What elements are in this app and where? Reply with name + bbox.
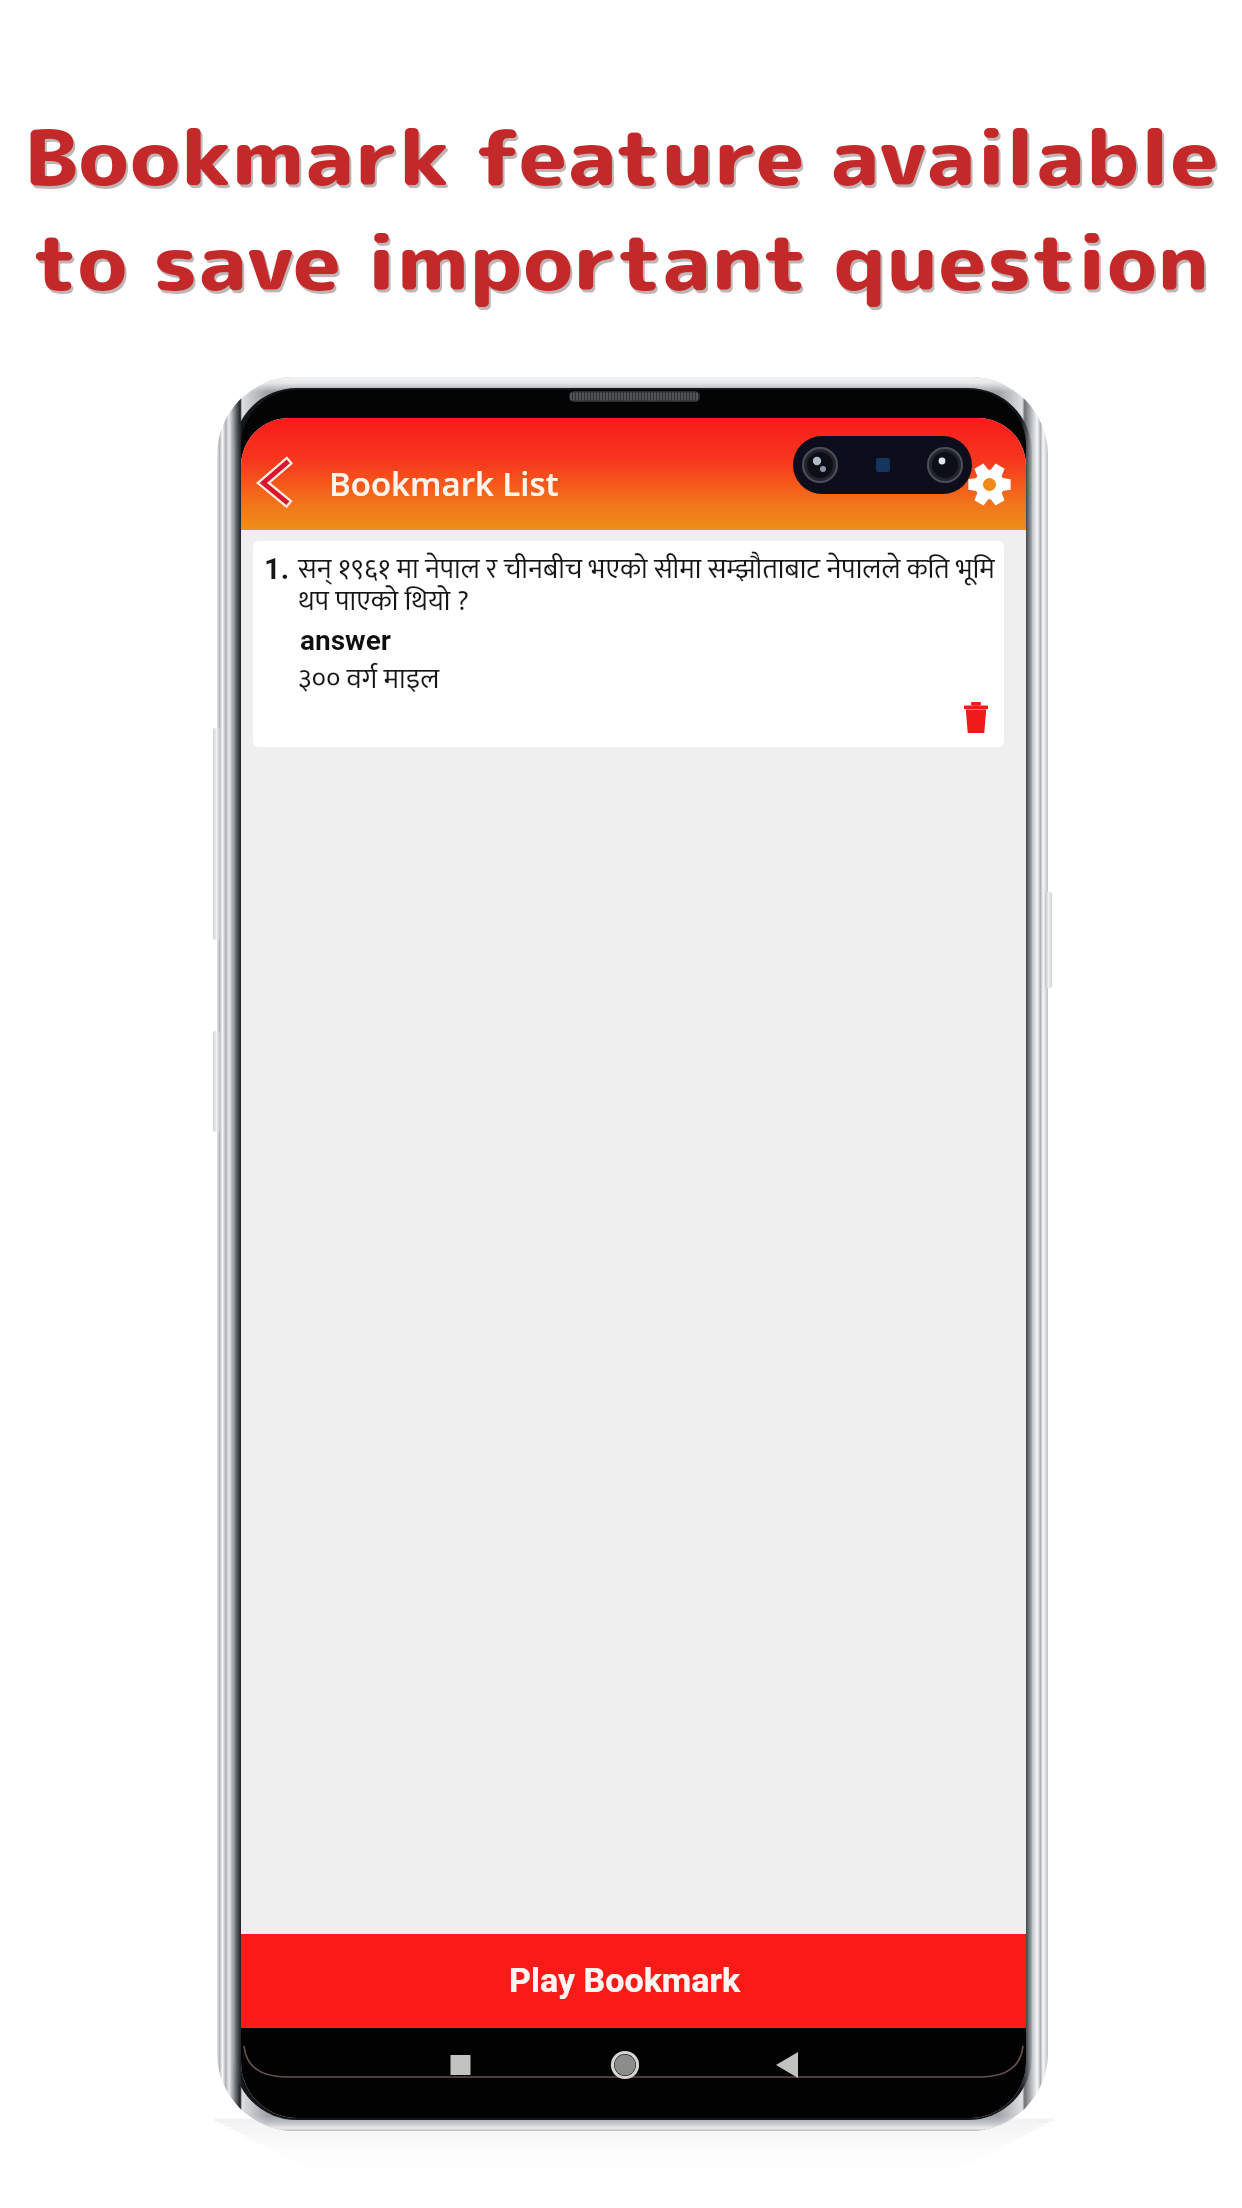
staticText: Play Bookmark [509, 1960, 741, 2000]
staticText: ३०० वर्ग माइल [298, 656, 440, 703]
button[interactable]: Back [241, 436, 297, 512]
button[interactable]: 1. [253, 541, 1004, 747]
button[interactable]: Settings [967, 462, 1012, 507]
staticText: 1. [264, 552, 290, 586]
button[interactable]: Delete bookmark [954, 695, 998, 739]
staticText: to save important question [32, 208, 1210, 314]
staticText: answer [300, 624, 392, 657]
staticText: सन् १९६१ मा नेपाल र चीनबीच भएको सीमा सम्… [298, 546, 998, 625]
staticText: Bookmark List [329, 461, 559, 506]
staticText: Bookmark feature available [26, 106, 1221, 212]
staticText: Bookmark feature available [24, 103, 1219, 209]
staticText: to save important question [34, 211, 1212, 317]
button[interactable]: Play Bookmark [241, 1934, 1026, 2028]
